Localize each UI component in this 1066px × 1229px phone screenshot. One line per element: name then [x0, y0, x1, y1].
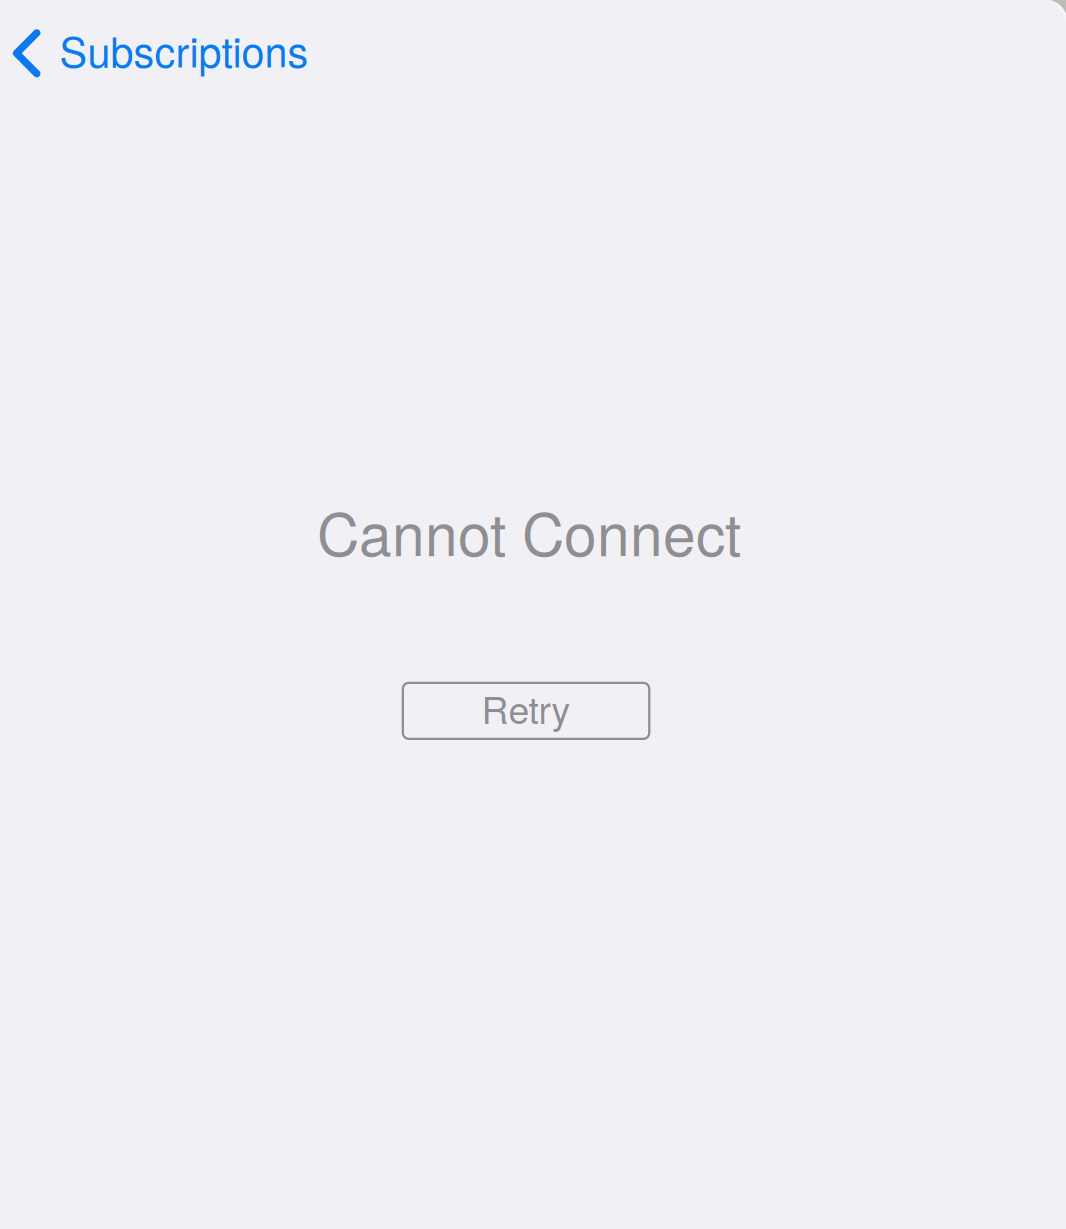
staticText: Retry [481, 681, 570, 735]
button[interactable]: Retry [402, 682, 650, 740]
staticText: Cannot Connect [317, 489, 741, 573]
button[interactable]: Subscriptions [0, 0, 318, 100]
staticText: Subscriptions [59, 20, 308, 79]
